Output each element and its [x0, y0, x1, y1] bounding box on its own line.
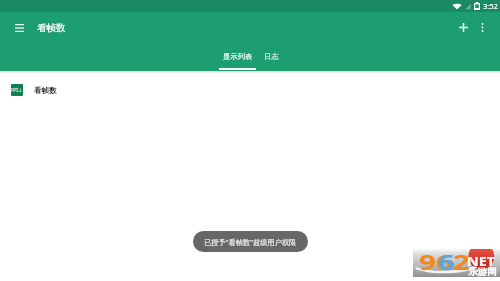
staticText: 已授予"看帧数"超级用户权限: [204, 237, 297, 247]
button[interactable]: More options: [472, 17, 493, 38]
button[interactable]: 日志: [257, 42, 286, 71]
staticText: 3:52: [483, 1, 498, 11]
staticText: 看帧数: [37, 22, 66, 34]
staticText: 乐游网: [468, 266, 497, 277]
button[interactable]: Add: [453, 17, 474, 38]
staticText: 962: [419, 249, 470, 271]
staticText: 显示列表: [223, 52, 253, 61]
button[interactable]: FPS↓: [0, 75, 500, 105]
staticText: 日志: [264, 52, 279, 61]
staticText: 看帧数: [34, 86, 57, 95]
button[interactable]: Menu: [9, 17, 30, 38]
staticText: NET: [467, 253, 496, 269]
staticText: FPS↓: [11, 87, 23, 93]
button[interactable]: 显示列表: [219, 42, 257, 71]
staticText: 6: [438, 249, 456, 271]
